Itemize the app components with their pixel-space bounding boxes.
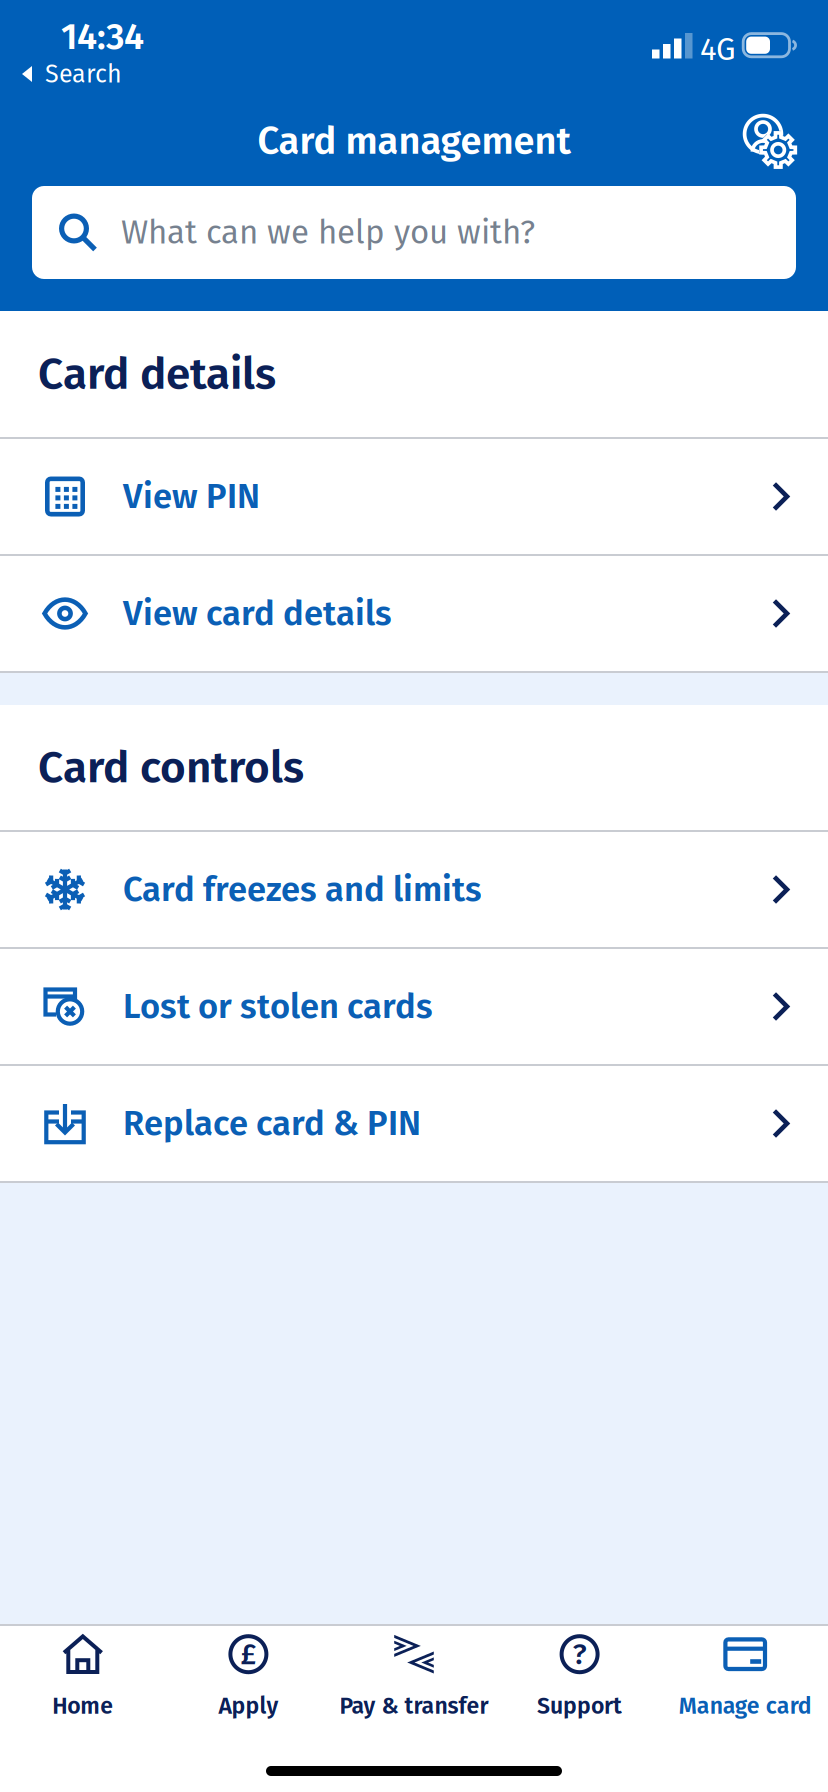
staticText: Card details xyxy=(38,348,276,400)
button[interactable]: ? xyxy=(497,1626,662,1730)
staticText: ? xyxy=(573,1636,587,1672)
button[interactable]: View card details xyxy=(0,556,828,671)
staticText: Card controls xyxy=(38,741,304,794)
button[interactable]: Manage card xyxy=(662,1626,828,1730)
staticText: 14:34 xyxy=(61,15,144,59)
staticText: Card management xyxy=(257,118,570,164)
button[interactable]: Account settings xyxy=(738,110,802,172)
staticText: View card details xyxy=(123,593,392,634)
staticText: Home xyxy=(52,1692,113,1720)
staticText: Apply xyxy=(218,1692,278,1720)
button[interactable]: Home xyxy=(0,1626,166,1730)
button[interactable]: Search xyxy=(32,186,796,279)
staticText: Manage card xyxy=(679,1692,812,1720)
button[interactable]: Card freezes and limits xyxy=(0,832,828,947)
button[interactable]: Pay & transfer xyxy=(331,1626,497,1730)
staticText: What can we help you with? xyxy=(121,213,535,252)
button[interactable]: Replace card & PIN xyxy=(0,1066,828,1181)
staticText: 4G xyxy=(700,31,736,68)
button[interactable]: £ xyxy=(166,1626,331,1730)
button[interactable]: View PIN xyxy=(0,439,828,554)
staticText: View PIN xyxy=(123,476,260,517)
staticText: Replace card & PIN xyxy=(123,1103,421,1144)
staticText: £ xyxy=(240,1636,256,1672)
staticText: Lost or stolen cards xyxy=(123,986,433,1027)
staticText: Card freezes and limits xyxy=(123,869,482,910)
button[interactable]: Lost or stolen cards xyxy=(0,949,828,1064)
staticText: Pay & transfer xyxy=(339,1692,488,1720)
staticText: Support xyxy=(537,1692,622,1720)
staticText: Search xyxy=(45,59,122,89)
